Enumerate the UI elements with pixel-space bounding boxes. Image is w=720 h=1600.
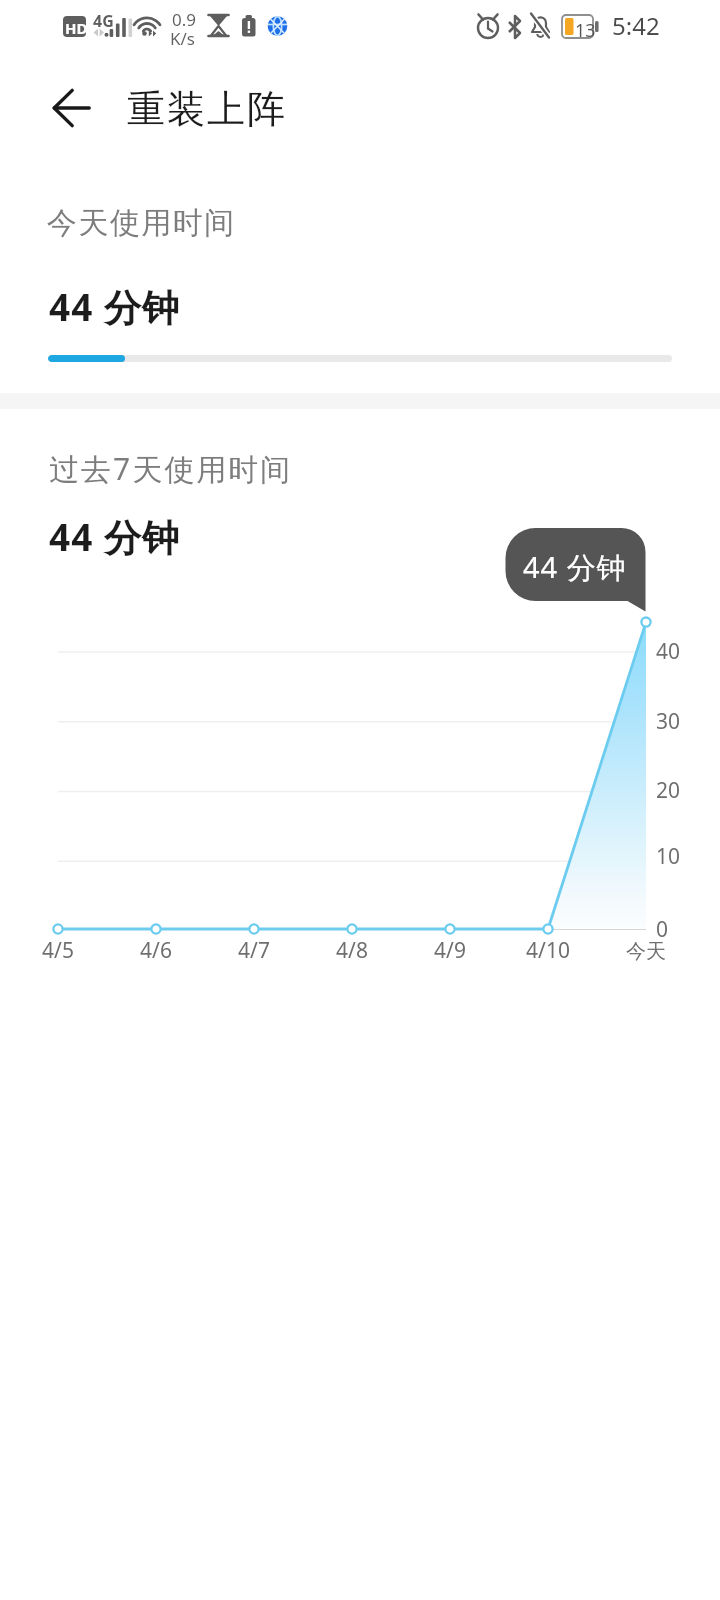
staticText: 4/7 [238,936,270,965]
staticText: 0 [656,915,669,944]
button[interactable]: Back [24,60,120,156]
staticText: 4G [93,10,114,32]
staticText: 13 [575,18,596,43]
staticText: 4/5 [42,936,74,965]
staticText: 44 分钟 [49,281,180,332]
staticText: 重装上阵 [126,85,286,133]
staticText: 今天 [626,939,666,964]
staticText: 30 [656,707,681,736]
staticText: 40 [656,637,681,666]
staticText: HD [65,18,88,38]
staticText: 4/8 [336,936,368,965]
staticText: 0.9 [172,8,197,31]
staticText: 5:42 [612,9,660,42]
staticText: 4/10 [526,936,570,965]
staticText: 10 [656,842,681,871]
staticText: 过去7天使用时间 [49,448,293,489]
staticText: 20 [656,776,681,805]
staticText: K/s [170,27,195,50]
staticText: 44 分钟 [49,511,180,562]
staticText: 4/6 [140,936,172,965]
staticText: 4/9 [434,936,466,965]
staticText: 44 分钟 [523,547,627,587]
staticText: 今天使用时间 [46,204,235,242]
